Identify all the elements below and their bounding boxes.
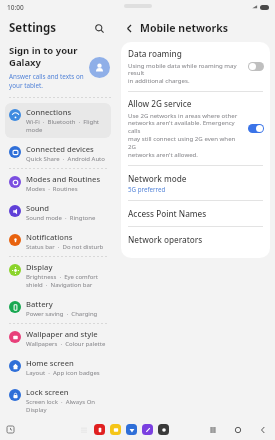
button[interactable]: Off [248,62,264,71]
staticText: Wallpaper and style [26,329,98,339]
button[interactable]: Back [257,424,268,435]
staticText: 5G preferred [128,185,166,193]
staticText: Sound mode · Ringtone [26,214,96,222]
staticText: Use 2G networks in areas where other net… [128,111,244,159]
button[interactable]: App 3 [142,424,153,435]
staticText: Layout · App icon badges [26,369,100,377]
button[interactable]: On [248,124,264,133]
staticText: Allow 2G service [128,98,192,109]
staticText: Screen lock · Always On Display [26,398,107,414]
staticText: Wi-Fi · Bluetooth · Flight mode [26,118,100,134]
button[interactable]: Connections [5,103,111,138]
button[interactable]: Data roaming [121,42,270,91]
button[interactable]: Back [122,21,137,36]
button[interactable]: Apps [79,425,89,435]
staticText: Answer calls and texts on your tablet. [9,72,84,90]
button[interactable]: Home screen [5,354,111,381]
staticText: Modes · Routines [26,185,78,193]
staticText: Power saving · Charging [26,310,98,318]
button[interactable]: Modes and Routines [5,170,111,197]
staticText: 10:00 [7,3,24,12]
button[interactable]: Recent [5,424,16,435]
staticText: Sign in to your Galaxy [9,44,78,69]
button[interactable]: Lock screen [5,383,111,418]
staticText: Sound [26,203,50,213]
staticText: Wallpapers · Colour palette [26,340,106,348]
staticText: Modes and Routines [26,174,101,184]
button[interactable]: App 2 [126,424,137,435]
button[interactable]: Connected devices [5,140,111,167]
staticText: Access Point Names [128,208,207,219]
staticText: Mobile networks [140,21,229,35]
staticText: Data roaming [128,48,182,59]
button[interactable]: Allow 2G service [121,92,270,165]
button[interactable]: Sign in to your Galaxy [0,42,116,98]
staticText: Using mobile data while roaming may resu… [128,61,244,85]
button[interactable]: Sound [5,199,111,226]
staticText: Battery [26,299,53,309]
button[interactable]: Network operators [121,227,270,252]
button[interactable]: Home [232,424,243,435]
button[interactable]: Network mode [121,166,270,200]
button[interactable]: Notifications [5,228,111,255]
staticText: Brightness · Eye comfort shield · Naviga… [26,273,98,289]
button[interactable]: Display [5,258,111,293]
button[interactable]: Wallpaper and style [5,325,111,352]
staticText: Connections [26,107,72,117]
button[interactable]: Recents [207,424,218,435]
staticText: Lock screen [26,387,69,397]
button[interactable]: App 1 [110,424,121,435]
staticText: Display [26,262,53,272]
button[interactable]: Access Point Names [121,201,270,226]
staticText: Status bar · Do not disturb [26,243,104,251]
staticText: Network operators [128,234,203,245]
staticText: Notifications [26,232,73,242]
staticText: Network mode [128,173,187,184]
staticText: Quick Share · Android Auto [26,155,105,163]
staticText: Home screen [26,358,74,368]
button[interactable]: Battery [5,295,111,322]
staticText: Settings [9,20,91,36]
button[interactable]: Search [91,20,107,36]
button[interactable]: App 0 [94,424,105,435]
button[interactable]: App 4 [158,424,169,435]
staticText: Connected devices [26,144,94,154]
